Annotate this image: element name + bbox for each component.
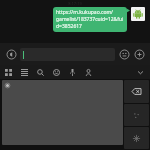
button[interactable]: More options bbox=[133, 48, 146, 61]
button[interactable]: Clipboard bbox=[19, 67, 30, 78]
button[interactable]: Emoji bbox=[118, 48, 131, 61]
button[interactable]: Backspace bbox=[124, 80, 149, 103]
button[interactable]: Voice typing bbox=[67, 67, 78, 78]
staticText: 8:17:19 bbox=[68, 1, 82, 6]
button[interactable]: Voice input bbox=[4, 47, 18, 61]
button[interactable]: Settings bbox=[83, 67, 94, 78]
button[interactable]: Emoji keyboard bbox=[51, 67, 62, 78]
button[interactable]: Enter bbox=[124, 127, 149, 149]
button[interactable]: Handwriting area bbox=[2, 80, 123, 145]
button[interactable]: https://m.kukupao.com/gamelist/183737cui… bbox=[53, 7, 127, 32]
button[interactable]: Search bbox=[35, 67, 46, 78]
button[interactable]: Keyboard layouts bbox=[3, 67, 14, 78]
button[interactable] bbox=[20, 48, 115, 61]
staticText: https://m.kukupao.com/gamelist/183737cui… bbox=[56, 9, 124, 30]
button[interactable]: Collapse keyboard bbox=[135, 67, 146, 78]
button[interactable]: Contact avatar bbox=[131, 7, 145, 21]
button[interactable]: Symbols bbox=[124, 104, 149, 126]
